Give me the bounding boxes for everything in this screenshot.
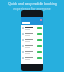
button[interactable]: Book bbox=[21, 49, 43, 55]
button[interactable]: Book bbox=[21, 55, 43, 61]
button[interactable]: Book bbox=[21, 25, 43, 31]
button[interactable]: Book bbox=[37, 57, 42, 59]
button[interactable]: Book bbox=[37, 33, 42, 35]
staticText: experience for everyone bbox=[13, 6, 51, 10]
button[interactable]: Book bbox=[37, 45, 42, 47]
button[interactable]: Book bbox=[21, 43, 43, 49]
button[interactable]: Book bbox=[37, 39, 42, 41]
button[interactable]: Book bbox=[21, 37, 43, 43]
staticText: Quick and easy mobile booking bbox=[8, 1, 57, 5]
button[interactable]: Book bbox=[37, 51, 42, 53]
button[interactable]: Book bbox=[37, 27, 42, 29]
button[interactable]: Book bbox=[21, 31, 43, 37]
